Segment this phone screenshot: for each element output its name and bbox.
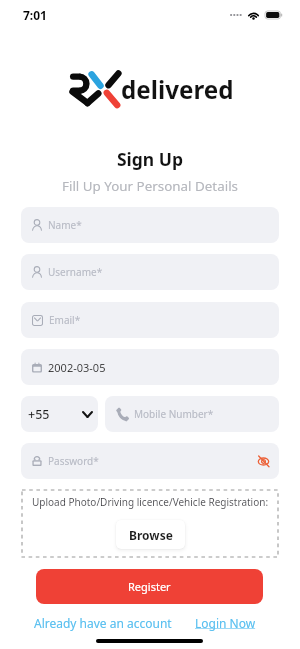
button[interactable]: Upload Photo/Driving licence/Vehicle Reg… (22, 490, 278, 557)
button[interactable]: 2002-03-05 (21, 349, 279, 385)
button[interactable]: Username* (21, 254, 279, 290)
button[interactable]: Login Now (195, 615, 256, 631)
staticText: +55 (28, 406, 50, 423)
staticText: Browse (129, 527, 173, 543)
staticText: Login Now (195, 615, 256, 631)
staticText: Already have an account (34, 615, 172, 631)
button[interactable]: Already have an account (34, 615, 172, 631)
staticText: Upload Photo/Driving licence/Vehicle Reg… (32, 495, 269, 509)
staticText: Mobile Number* (134, 407, 214, 421)
staticText: 7:01 (23, 7, 47, 23)
button[interactable]: Browse (116, 520, 185, 549)
staticText: Fill Up Your Personal Details (0, 177, 300, 195)
staticText: delivered (121, 73, 234, 106)
button[interactable]: Name* (21, 207, 279, 243)
staticText: Name* (48, 218, 82, 232)
staticText: Email* (49, 313, 81, 327)
staticText: Username* (48, 265, 103, 279)
staticText: Password* (48, 454, 99, 468)
button[interactable]: +55 (21, 396, 98, 432)
staticText: 2002-03-05 (48, 360, 106, 375)
button[interactable]: Register (36, 569, 263, 604)
button[interactable]: Email* (21, 302, 279, 338)
button[interactable]: Toggle password visibility (253, 451, 273, 471)
button[interactable]: Mobile Number* (105, 396, 279, 432)
staticText: Sign Up (0, 147, 300, 171)
staticText: Register (128, 579, 171, 594)
button[interactable]: Password* (21, 443, 279, 479)
